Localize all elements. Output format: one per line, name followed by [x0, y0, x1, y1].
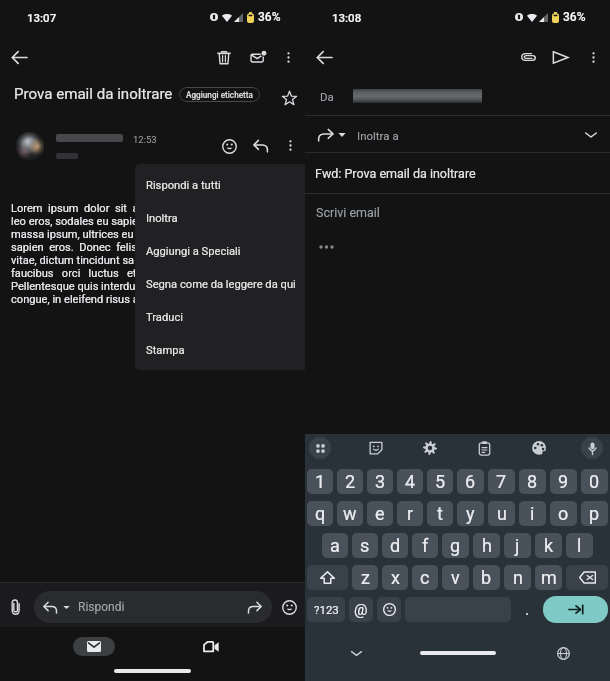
button[interactable]: a [322, 533, 348, 558]
button[interactable]: Rispondi [34, 591, 272, 623]
button[interactable]: Back [1, 39, 37, 75]
staticText: Da [320, 90, 334, 103]
staticText: m [541, 567, 557, 588]
staticText: leo eros, sodales eu sapie [11, 215, 138, 228]
button[interactable]: Aggiungi a Speciali [135, 235, 310, 268]
button[interactable]: Traduci [135, 301, 310, 334]
button[interactable]: 7 [488, 469, 515, 494]
staticText: 7 [496, 471, 507, 492]
button[interactable]: 8 [519, 469, 546, 494]
button[interactable]: ?123 [307, 597, 345, 622]
button[interactable]: Stampa [135, 334, 310, 367]
button[interactable]: p [581, 501, 608, 526]
staticText: faucibus orci luctus et [11, 267, 137, 280]
button[interactable]: Voice input [581, 437, 603, 459]
staticText: sapien eros. Donec felis [11, 241, 137, 254]
button[interactable]: l [566, 533, 593, 558]
staticText: Aggiungi a Speciali [146, 245, 241, 258]
button[interactable]: Theme [525, 434, 553, 462]
staticText: Lorem ipsum dolor sit ame [11, 202, 155, 215]
button[interactable]: Clipboard [470, 434, 498, 462]
button[interactable]: Backspace [566, 565, 608, 590]
staticText: Inoltra [146, 212, 178, 225]
button[interactable]: 0 [581, 469, 608, 494]
button[interactable]: z [352, 565, 378, 590]
staticText: c [420, 567, 430, 588]
button[interactable]: Send [542, 39, 578, 75]
button[interactable]: 9 [550, 469, 577, 494]
button[interactable]: Emoji [377, 597, 401, 622]
staticText: o [558, 503, 569, 524]
button[interactable]: w [337, 501, 363, 526]
button[interactable]: More options [575, 39, 610, 75]
staticText: Aggiungi etichetta [186, 90, 253, 100]
button[interactable]: Add reaction [213, 130, 245, 162]
button[interactable]: Shift [307, 565, 348, 590]
button[interactable]: v [442, 565, 469, 590]
button[interactable]: 4 [397, 469, 423, 494]
button[interactable]: Star [275, 84, 303, 112]
staticText: Inoltra a [357, 129, 399, 142]
staticText: Stampa [146, 344, 185, 357]
button[interactable]: Settings [416, 434, 444, 462]
button[interactable]: c [412, 565, 438, 590]
button[interactable]: u [488, 501, 515, 526]
button[interactable]: 2 [337, 469, 363, 494]
button[interactable]: Enter [543, 596, 608, 623]
button[interactable]: j [504, 533, 531, 558]
button[interactable]: Apps [309, 437, 331, 459]
button[interactable]: r [397, 501, 423, 526]
button[interactable]: d [382, 533, 408, 558]
button[interactable]: q [307, 501, 333, 526]
staticText: x [391, 567, 400, 588]
button[interactable]: 5 [427, 469, 453, 494]
button[interactable]: Delete [206, 39, 242, 75]
staticText: 12:53 [133, 134, 157, 145]
button[interactable]: t [427, 501, 453, 526]
button[interactable]: o [550, 501, 577, 526]
button[interactable]: f [412, 533, 438, 558]
button[interactable]: More [275, 130, 305, 160]
button[interactable]: k [535, 533, 562, 558]
button[interactable]: Back [306, 39, 342, 75]
button[interactable]: x [382, 565, 408, 590]
button[interactable]: Inoltra [135, 202, 310, 235]
button[interactable]: Meet [194, 630, 228, 664]
button[interactable]: Rispondi a tutti [135, 169, 310, 202]
staticText: 0 [589, 471, 600, 492]
button[interactable]: @ [349, 597, 373, 622]
button[interactable]: n [504, 565, 531, 590]
button[interactable]: . [515, 597, 539, 622]
button[interactable]: e [367, 501, 393, 526]
button[interactable]: Segna come da leggere da qui [135, 268, 310, 301]
button[interactable]: 3 [367, 469, 393, 494]
staticText: 36% [258, 10, 281, 24]
button[interactable]: Stickers [362, 434, 390, 462]
button[interactable]: s [352, 533, 378, 558]
button[interactable]: Fwd: Prova email da inoltrare [305, 153, 610, 193]
staticText: k [544, 535, 554, 556]
button[interactable]: i [519, 501, 546, 526]
staticText: 36% [563, 10, 586, 24]
button[interactable]: Mark as unread [240, 39, 276, 75]
button[interactable]: Attach file [510, 39, 546, 75]
button[interactable]: Aggiungi etichetta [179, 87, 260, 102]
button[interactable]: y [457, 501, 484, 526]
button[interactable]: More options [270, 39, 306, 75]
button[interactable]: Emoji [276, 594, 302, 620]
button[interactable]: Mail [73, 637, 115, 656]
button[interactable]: Inoltra a [305, 118, 610, 152]
button[interactable]: g [442, 533, 469, 558]
button[interactable]: 1 [307, 469, 333, 494]
button[interactable]: Attach file [3, 594, 29, 620]
button[interactable]: m [535, 565, 562, 590]
staticText: Rispondi a tutti [146, 179, 221, 192]
button[interactable]: b [473, 565, 500, 590]
staticText: 13:07 [27, 11, 57, 24]
button[interactable]: h [473, 533, 500, 558]
staticText: u [497, 503, 507, 524]
button[interactable]: 6 [457, 469, 484, 494]
staticText: 6 [465, 471, 476, 492]
button[interactable]: Reply [245, 130, 277, 162]
